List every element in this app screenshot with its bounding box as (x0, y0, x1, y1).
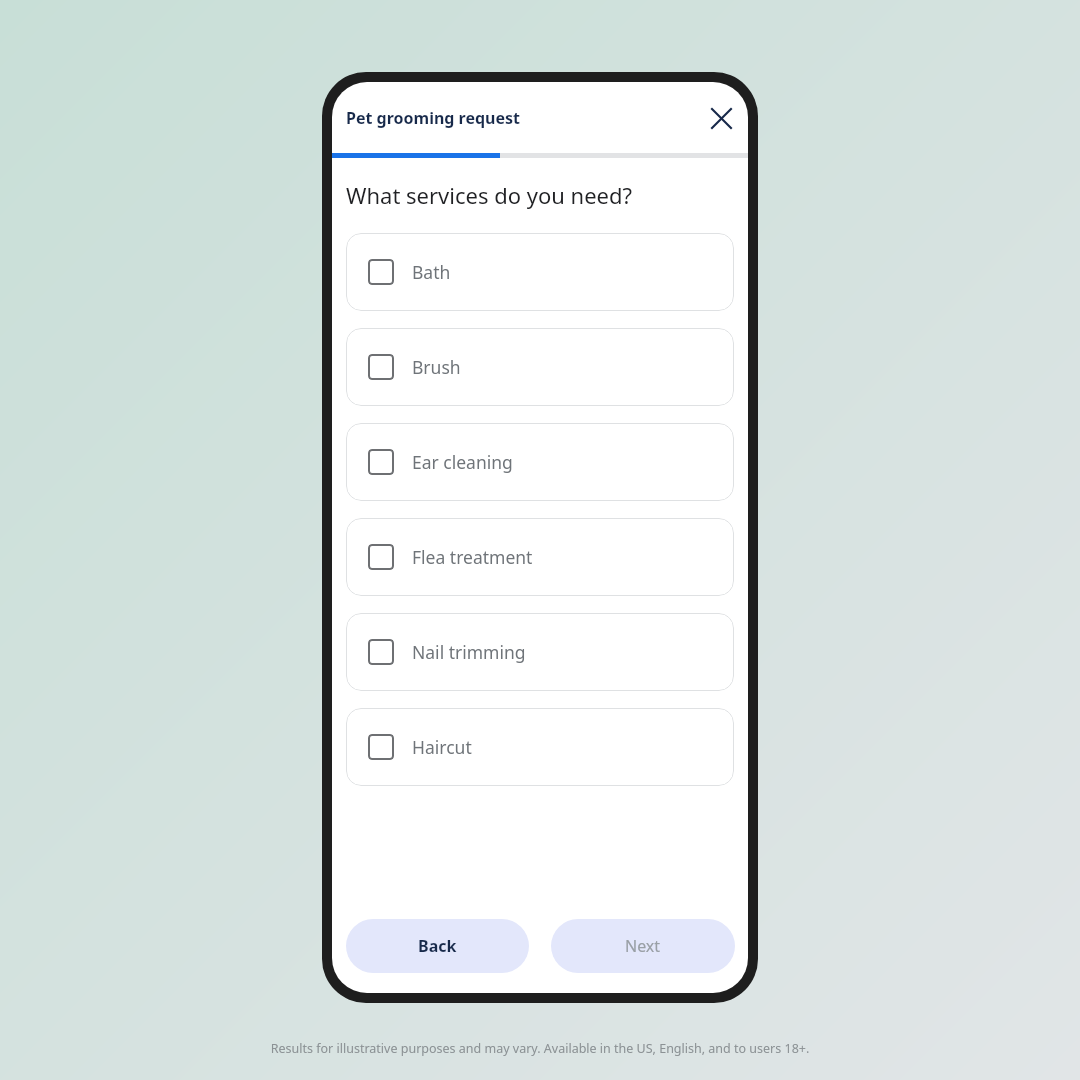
button[interactable]: Next (551, 919, 735, 973)
button[interactable]: Nail trimming (346, 613, 734, 691)
button[interactable]: Back (346, 919, 529, 973)
staticText: Nail trimming (412, 640, 526, 664)
staticText: Pet grooming request (346, 107, 521, 129)
staticText: What services do you need? (346, 180, 633, 210)
staticText: Flea treatment (412, 545, 533, 569)
button[interactable]: Brush (346, 328, 734, 406)
staticText: Haircut (412, 735, 472, 759)
staticText: Brush (412, 355, 461, 379)
staticText: Next (625, 935, 661, 957)
button[interactable]: Close (699, 96, 743, 140)
staticText: Back (418, 935, 457, 957)
button[interactable]: Bath (346, 233, 734, 311)
button[interactable]: Flea treatment (346, 518, 734, 596)
button[interactable]: Ear cleaning (346, 423, 734, 501)
button[interactable]: Haircut (346, 708, 734, 786)
staticText: Ear cleaning (412, 450, 513, 474)
staticText: Bath (412, 260, 451, 284)
staticText: Results for illustrative purposes and ma… (0, 1040, 1080, 1057)
